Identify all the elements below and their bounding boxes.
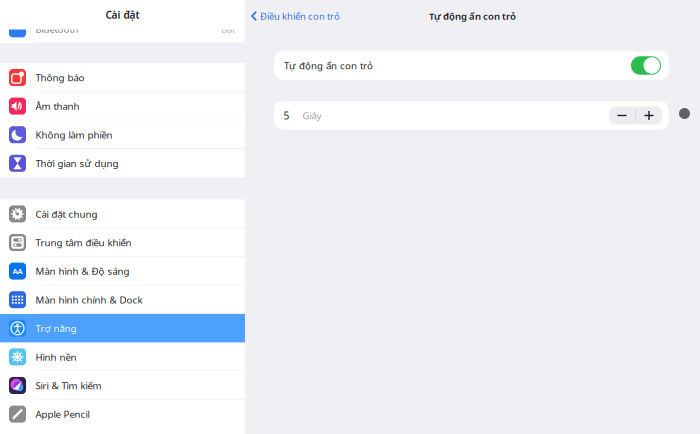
button[interactable]: Tăng xyxy=(636,106,662,124)
button[interactable]: Tự động ẩn con trỏ xyxy=(631,52,669,79)
button[interactable]: Điều khiển con trỏ xyxy=(245,4,340,28)
staticText: Cài đặt xyxy=(105,8,139,22)
button[interactable]: Bluetooth xyxy=(0,15,245,43)
staticText: Không làm phiền xyxy=(35,128,112,141)
button[interactable]: Thời gian sử dụng xyxy=(0,149,245,178)
staticText: Giây xyxy=(302,109,321,122)
staticText: Trợ năng xyxy=(35,322,76,335)
staticText: Tự động ẩn con trỏ xyxy=(284,59,373,72)
staticText: Màn hình & Độ sáng xyxy=(35,264,129,278)
button[interactable]: AA xyxy=(0,257,245,285)
staticText: 5 xyxy=(283,109,289,122)
staticText: Điều khiển con trỏ xyxy=(260,10,340,22)
staticText: Tự động ẩn con trỏ xyxy=(429,9,516,23)
staticText: Thông báo xyxy=(35,71,84,84)
staticText: Cài đặt chung xyxy=(35,207,97,220)
button[interactable]: Apple Pencil xyxy=(0,400,245,428)
button[interactable]: Màn hình chính & Dock xyxy=(0,285,245,314)
staticText: Âm thanh xyxy=(35,99,79,113)
button[interactable]: Âm thanh xyxy=(0,92,245,120)
button[interactable]: Giảm xyxy=(609,106,635,124)
button[interactable]: Trợ năng xyxy=(0,314,245,343)
staticText: Bluetooth xyxy=(35,22,78,35)
button[interactable]: Trung tâm điều khiển xyxy=(0,228,245,257)
staticText: Thời gian sử dụng xyxy=(35,157,118,170)
button[interactable]: Thông báo xyxy=(0,63,245,92)
staticText: Siri & Tìm kiếm xyxy=(35,379,101,392)
button[interactable]: Cài đặt chung xyxy=(0,200,245,228)
staticText: Bật xyxy=(221,22,235,35)
button[interactable]: Hình nền xyxy=(0,343,245,371)
staticText: Apple Pencil xyxy=(35,407,89,421)
staticText: Trung tâm điều khiển xyxy=(35,236,131,249)
button[interactable]: Không làm phiền xyxy=(0,120,245,149)
staticText: AA xyxy=(12,266,22,276)
staticText: Màn hình chính & Dock xyxy=(35,293,142,306)
staticText: Hình nền xyxy=(35,350,76,363)
button[interactable]: Siri & Tìm kiếm xyxy=(0,371,245,400)
